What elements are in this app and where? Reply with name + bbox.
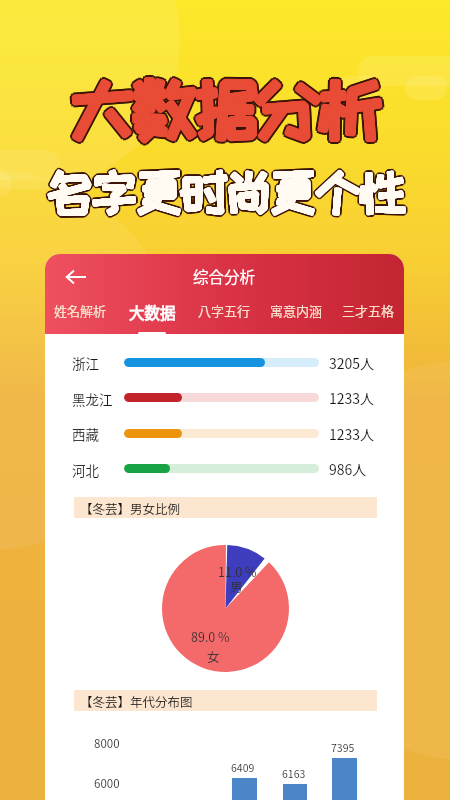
staticText: 名字更时尚更个性 — [49, 166, 407, 217]
staticText: 黑龙江 — [72, 389, 113, 409]
staticText: 名字更时尚更个性 — [43, 165, 401, 216]
staticText: 大数据分析 — [71, 73, 381, 144]
staticText: 1233人 — [329, 424, 375, 444]
staticText: 大数据分析 — [68, 75, 378, 146]
staticText: 名字更时尚更个性 — [46, 169, 404, 220]
staticText: 大数据分析 — [68, 73, 378, 144]
staticText: 名字更时尚更个性 — [44, 164, 402, 215]
staticText: 986人 — [329, 459, 367, 479]
staticText: 【冬芸】男女比例 — [80, 499, 181, 517]
staticText: 名字更时尚更个性 — [46, 165, 404, 216]
staticText: 名字更时尚更个性 — [49, 167, 407, 218]
staticText: 大数据 — [129, 301, 176, 323]
staticText: 名字更时尚更个性 — [44, 168, 402, 219]
staticText: 西藏 — [72, 424, 99, 444]
staticText: 名字更时尚更个性 — [47, 165, 405, 216]
staticText: 名字更时尚更个性 — [45, 167, 403, 218]
staticText: 名字更时尚更个性 — [43, 167, 401, 218]
staticText: 名字更时尚更个性 — [46, 165, 404, 216]
staticText: 11.0 % — [218, 562, 257, 580]
staticText: 名字更时尚更个性 — [48, 164, 406, 215]
staticText: 大数据分析 — [71, 70, 381, 141]
staticText: 河北 — [72, 460, 99, 480]
staticText: 名字更时尚更个性 — [49, 165, 407, 216]
staticText: 大数据分析 — [68, 74, 378, 145]
staticText: 6409 — [231, 760, 255, 775]
staticText: 名字更时尚更个性 — [46, 167, 404, 218]
staticText: 89.0 % — [191, 627, 230, 645]
staticText: 大数据分析 — [74, 73, 384, 144]
staticText: 大数据分析 — [69, 72, 379, 143]
button[interactable]: 姓名解析 — [45, 301, 116, 329]
staticText: 大数据分析 — [70, 72, 380, 143]
staticText: 7395 — [331, 740, 355, 755]
button[interactable]: 大数据 — [116, 301, 188, 335]
staticText: 大数据分析 — [71, 72, 381, 143]
staticText: 6000 — [94, 775, 120, 792]
staticText: 3205人 — [329, 353, 375, 373]
staticText: 名字更时尚更个性 — [43, 166, 401, 217]
staticText: 大数据分析 — [72, 73, 382, 144]
staticText: 大数据分析 — [69, 76, 379, 147]
staticText: 【冬芸】年代分布图 — [80, 692, 193, 710]
staticText: 名字更时尚更个性 — [45, 166, 403, 217]
staticText: 名字更时尚更个性 — [47, 166, 405, 217]
staticText: 名字更时尚更个性 — [47, 167, 405, 218]
staticText: 综合分析 — [193, 265, 256, 287]
staticText: 大数据分析 — [71, 75, 381, 146]
staticText: 名字更时尚更个性 — [46, 165, 404, 216]
staticText: 名字更时尚更个性 — [45, 166, 403, 217]
staticText: 大数据分析 — [67, 77, 377, 148]
staticText: 大数据分析 — [69, 70, 379, 141]
staticText: 名字更时尚更个性 — [45, 163, 403, 214]
button[interactable]: 三才五格 — [332, 301, 404, 329]
staticText: 八字五行 — [198, 301, 251, 320]
staticText: 名字更时尚更个性 — [45, 169, 403, 220]
staticText: 名字更时尚更个性 — [46, 166, 404, 217]
staticText: 大数据分析 — [67, 71, 377, 142]
staticText: 名字更时尚更个性 — [47, 166, 405, 217]
staticText: 大数据分析 — [69, 73, 379, 144]
staticText: 大数据分析 — [66, 74, 376, 145]
staticText: 8000 — [94, 735, 120, 752]
staticText: 名字更时尚更个性 — [45, 166, 403, 217]
staticText: 大数据分析 — [66, 75, 376, 146]
staticText: 女 — [207, 647, 220, 665]
staticText: 名字更时尚更个性 — [45, 165, 403, 216]
staticText: 大数据分析 — [70, 74, 380, 145]
staticText: 名字更时尚更个性 — [48, 168, 406, 219]
staticText: 大数据分析 — [73, 71, 383, 142]
button[interactable]: 八字五行 — [188, 301, 260, 329]
staticText: 三才五格 — [342, 301, 395, 320]
staticText: 大数据分析 — [69, 78, 379, 149]
staticText: 名字更时尚更个性 — [47, 166, 405, 217]
staticText: 姓名解析 — [54, 301, 107, 320]
staticText: 1233人 — [329, 388, 375, 408]
staticText: 大数据分析 — [70, 78, 380, 149]
staticText: 大数据分析 — [72, 75, 382, 146]
staticText: 6163 — [282, 766, 306, 781]
staticText: 名字更时尚更个性 — [47, 163, 405, 214]
staticText: 大数据分析 — [73, 77, 383, 148]
staticText: 大数据分析 — [74, 75, 384, 146]
staticText: 大数据分析 — [71, 78, 381, 149]
staticText: 名字更时尚更个性 — [46, 167, 404, 218]
button[interactable]: 寓意内涵 — [260, 301, 332, 329]
staticText: 大数据分析 — [71, 76, 381, 147]
staticText: 大数据分析 — [74, 74, 384, 145]
staticText: 名字更时尚更个性 — [46, 167, 404, 218]
staticText: 浙江 — [72, 353, 99, 373]
staticText: 名字更时尚更个性 — [46, 163, 404, 214]
staticText: 大数据分析 — [70, 76, 380, 147]
button[interactable]: Back — [55, 256, 97, 298]
staticText: 寓意内涵 — [270, 301, 323, 320]
staticText: 大数据分析 — [69, 75, 379, 146]
staticText: 名字更时尚更个性 — [47, 169, 405, 220]
staticText: 大数据分析 — [66, 73, 376, 144]
staticText: 大数据分析 — [72, 74, 382, 145]
staticText: 男 — [230, 577, 243, 595]
staticText: 大数据分析 — [70, 70, 380, 141]
